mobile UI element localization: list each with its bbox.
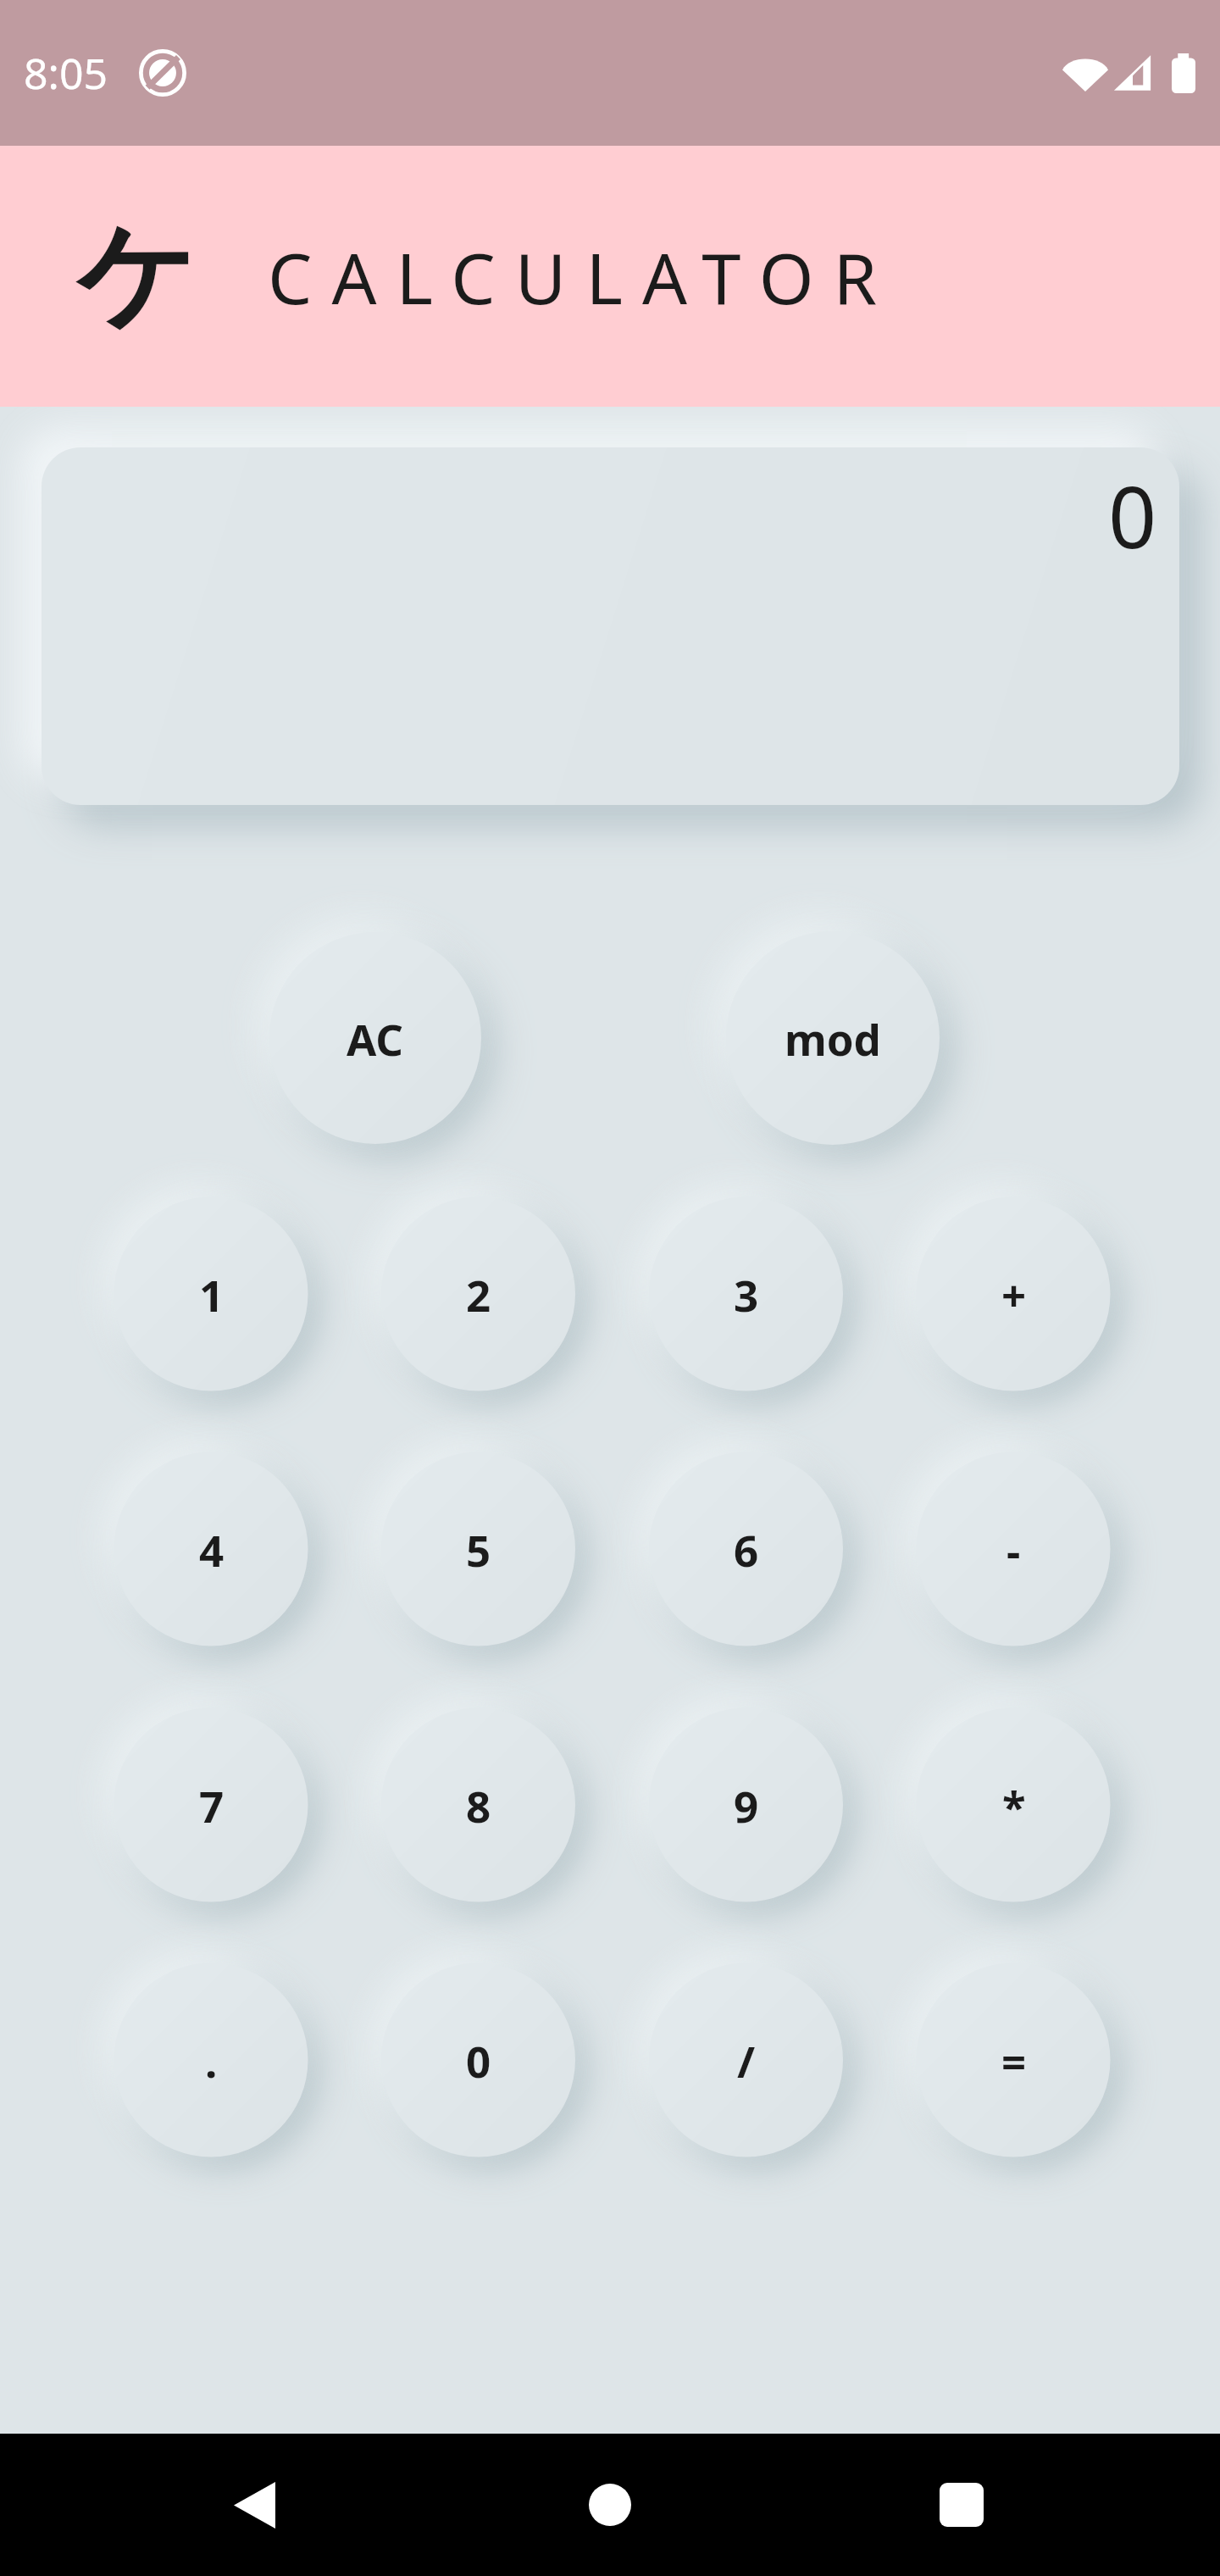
staticText: CALCULATOR bbox=[268, 229, 897, 325]
staticText: 7 bbox=[199, 1776, 225, 1835]
button[interactable]: + bbox=[917, 1197, 1111, 1391]
button[interactable]: 6 bbox=[649, 1452, 843, 1646]
staticText: 1 bbox=[199, 1265, 225, 1324]
staticText: ケ bbox=[76, 203, 197, 350]
staticText: 4 bbox=[199, 1520, 225, 1579]
staticText: . bbox=[205, 2031, 218, 2090]
button[interactable]: 5 bbox=[381, 1452, 575, 1646]
staticText: 8 bbox=[466, 1776, 491, 1835]
button[interactable]: Home bbox=[551, 2446, 669, 2564]
staticText: + bbox=[1001, 1265, 1027, 1324]
staticText: = bbox=[1001, 2031, 1027, 2090]
staticText: 3 bbox=[734, 1265, 759, 1324]
button[interactable]: mod bbox=[726, 931, 940, 1145]
button[interactable]: 0 bbox=[381, 1963, 575, 2157]
staticText: 5 bbox=[466, 1520, 491, 1579]
button[interactable]: - bbox=[917, 1452, 1111, 1646]
button[interactable]: 2 bbox=[381, 1197, 575, 1391]
button[interactable]: 4 bbox=[114, 1452, 308, 1646]
staticText: * bbox=[1002, 1776, 1026, 1835]
button[interactable]: 9 bbox=[649, 1708, 843, 1902]
button[interactable]: = bbox=[917, 1963, 1111, 2157]
staticText: 0 bbox=[466, 2031, 491, 2090]
staticText: 9 bbox=[734, 1776, 759, 1835]
staticText: AC bbox=[347, 1009, 404, 1068]
button[interactable]: AC bbox=[269, 932, 481, 1144]
button[interactable]: 3 bbox=[649, 1197, 843, 1391]
button[interactable]: . bbox=[114, 1963, 308, 2157]
button[interactable]: 8 bbox=[381, 1708, 575, 1902]
staticText: / bbox=[737, 2031, 756, 2090]
staticText: 2 bbox=[466, 1265, 491, 1324]
staticText: - bbox=[1006, 1520, 1021, 1579]
staticText: 0 bbox=[1108, 458, 1157, 573]
button[interactable]: / bbox=[649, 1963, 843, 2157]
staticText: mod bbox=[785, 1009, 881, 1068]
button[interactable]: 1 bbox=[114, 1197, 308, 1391]
staticText: 6 bbox=[734, 1520, 759, 1579]
staticText: 8:05 bbox=[24, 44, 108, 102]
button[interactable]: Back bbox=[195, 2446, 313, 2564]
button[interactable]: 7 bbox=[114, 1708, 308, 1902]
button[interactable]: Recent apps bbox=[902, 2446, 1021, 2564]
button[interactable]: * bbox=[917, 1708, 1111, 1902]
